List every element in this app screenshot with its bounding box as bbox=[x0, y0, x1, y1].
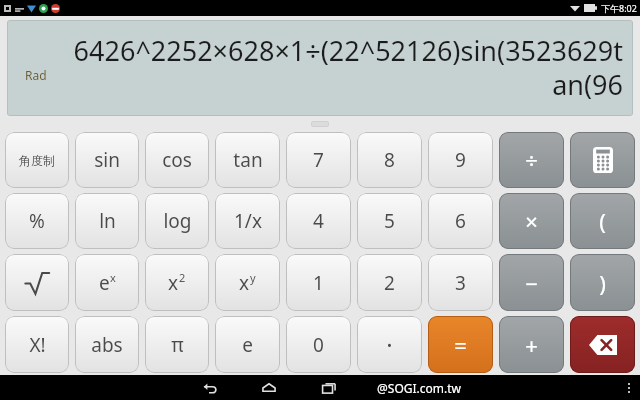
staticText: 1/x bbox=[234, 208, 262, 234]
button[interactable]: 3 bbox=[428, 254, 493, 311]
button[interactable]: 9 bbox=[428, 132, 493, 188]
staticText: 2 bbox=[384, 270, 395, 296]
staticText: 6 bbox=[455, 208, 466, 234]
staticText: abs bbox=[91, 332, 123, 358]
button[interactable]: = bbox=[428, 316, 493, 373]
button[interactable]: abs bbox=[75, 316, 139, 373]
staticText: sin bbox=[94, 147, 120, 173]
staticText: tan bbox=[233, 147, 263, 173]
staticText: X! bbox=[29, 332, 46, 358]
staticText: 角度制 bbox=[19, 153, 55, 168]
button[interactable]: · bbox=[357, 316, 422, 373]
staticText: − bbox=[525, 268, 538, 298]
button[interactable]: 角度制 bbox=[5, 132, 69, 188]
button[interactable]: 7 bbox=[286, 132, 351, 188]
button[interactable]: Home bbox=[239, 375, 299, 400]
staticText: cos bbox=[162, 147, 192, 173]
button[interactable]: x bbox=[145, 254, 209, 311]
button[interactable]: 1/x bbox=[215, 193, 280, 249]
staticText: x bbox=[110, 270, 116, 285]
button[interactable]: 2 bbox=[357, 254, 422, 311]
button[interactable]: 6 bbox=[428, 193, 493, 249]
button[interactable]: π bbox=[145, 316, 209, 373]
button[interactable]: e bbox=[215, 316, 280, 373]
staticText: 8 bbox=[384, 147, 395, 173]
button[interactable]: x bbox=[215, 254, 280, 311]
button[interactable]: 1 bbox=[286, 254, 351, 311]
staticText: x bbox=[168, 270, 179, 296]
button[interactable]: X! bbox=[5, 316, 69, 373]
staticText: ÷ bbox=[525, 145, 538, 175]
staticText: × bbox=[525, 206, 538, 236]
staticText: x bbox=[239, 270, 250, 296]
button[interactable]: 5 bbox=[357, 193, 422, 249]
button[interactable]: Calculator mode bbox=[570, 132, 635, 188]
button[interactable]: Square root bbox=[5, 254, 69, 311]
staticText: % bbox=[29, 208, 45, 234]
staticText: ( bbox=[599, 206, 606, 236]
button[interactable]: ( bbox=[570, 193, 635, 249]
staticText: 9 bbox=[455, 147, 466, 173]
button[interactable]: 8 bbox=[357, 132, 422, 188]
button[interactable]: ) bbox=[570, 254, 635, 311]
staticText: @SOGI.com.tw bbox=[377, 380, 461, 396]
staticText: 4 bbox=[313, 208, 324, 234]
button[interactable]: tan bbox=[215, 132, 280, 188]
staticText: 7 bbox=[313, 147, 324, 173]
staticText: + bbox=[525, 330, 538, 360]
button[interactable]: 0 bbox=[286, 316, 351, 373]
button[interactable]: log bbox=[145, 193, 209, 249]
button[interactable]: − bbox=[499, 254, 564, 311]
staticText: 2 bbox=[179, 270, 186, 285]
button[interactable]: sin bbox=[75, 132, 139, 188]
staticText: 5 bbox=[384, 208, 395, 234]
button[interactable]: cos bbox=[145, 132, 209, 188]
button[interactable]: + bbox=[499, 316, 564, 373]
button[interactable]: Back bbox=[179, 375, 239, 400]
staticText: 下午8:02 bbox=[601, 2, 637, 14]
button[interactable]: ln bbox=[75, 193, 139, 249]
button[interactable]: % bbox=[5, 193, 69, 249]
staticText: 0 bbox=[313, 332, 324, 358]
button[interactable]: Delete bbox=[570, 316, 635, 373]
staticText: ) bbox=[599, 268, 606, 298]
button[interactable]: ÷ bbox=[499, 132, 564, 188]
staticText: e bbox=[99, 270, 110, 296]
staticText: · bbox=[386, 328, 393, 361]
staticText: e bbox=[242, 332, 253, 358]
staticText: π bbox=[171, 332, 184, 358]
staticText: 6426^2252×628×1÷(22^52126)sin(3523629tan… bbox=[69, 32, 623, 103]
staticText: 1 bbox=[313, 270, 324, 296]
staticText: = bbox=[454, 330, 467, 360]
button[interactable]: × bbox=[499, 193, 564, 249]
staticText: Rad bbox=[25, 67, 47, 83]
staticText: 3 bbox=[455, 270, 466, 296]
staticText: log bbox=[163, 208, 192, 234]
button[interactable]: e bbox=[75, 254, 139, 311]
staticText: ln bbox=[99, 208, 116, 234]
staticText: y bbox=[250, 270, 256, 285]
button[interactable]: Rad bbox=[7, 20, 633, 116]
button[interactable]: 4 bbox=[286, 193, 351, 249]
button[interactable]: Recents bbox=[299, 375, 359, 400]
